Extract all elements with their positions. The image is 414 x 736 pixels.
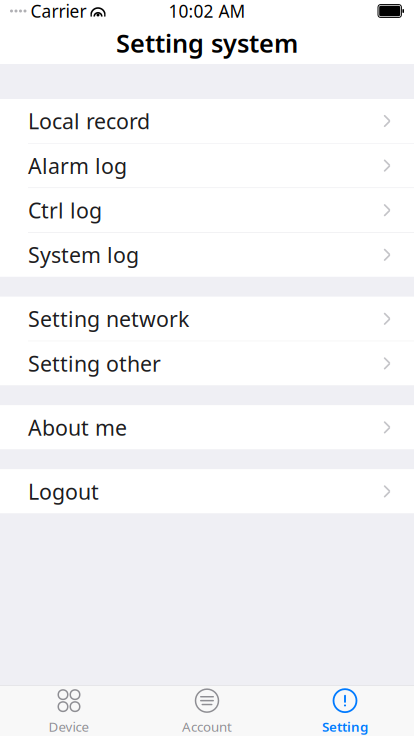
staticText: Setting network — [28, 305, 189, 333]
staticText: Setting other — [28, 349, 161, 377]
button[interactable]: Logout — [0, 469, 414, 513]
button[interactable]: Setting — [276, 686, 414, 736]
staticText: System log — [28, 241, 139, 269]
staticText: Local record — [28, 107, 150, 135]
button[interactable]: Setting network — [0, 297, 414, 341]
staticText: About me — [28, 413, 127, 441]
button[interactable]: Ctrl log — [0, 188, 414, 232]
button[interactable]: System log — [0, 233, 414, 277]
staticText: Device — [48, 718, 89, 735]
staticText: Alarm log — [28, 151, 127, 180]
staticText: Ctrl log — [28, 196, 102, 224]
staticText: Setting — [322, 718, 368, 735]
staticText: Logout — [28, 477, 99, 505]
button[interactable]: Setting other — [0, 341, 414, 385]
staticText: 10:02 AM — [168, 0, 245, 22]
staticText: Account — [182, 718, 232, 735]
button[interactable]: Account — [138, 686, 276, 736]
staticText: Setting system — [116, 26, 298, 60]
button[interactable]: Alarm log — [0, 144, 414, 188]
staticText: Carrier — [30, 0, 86, 22]
button[interactable]: Device — [0, 686, 138, 736]
button[interactable]: Local record — [0, 99, 414, 143]
button[interactable]: About me — [0, 405, 414, 449]
